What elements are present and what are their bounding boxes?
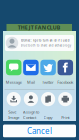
button[interactable]: Twitter <box>39 60 57 85</box>
button[interactable]: Copy <box>39 92 57 120</box>
button[interactable]: Save Image <box>5 92 22 120</box>
button[interactable]: Assign to Contact <box>22 92 39 120</box>
staticText: Save Image <box>8 109 19 120</box>
staticText: Cancel <box>27 126 52 136</box>
button[interactable]: Facebook <box>57 60 74 85</box>
staticText: tdOnse: Tips to turn an iB if I used <box>21 39 70 42</box>
button[interactable]: Mail <box>22 60 39 85</box>
staticText: Assign to Contact <box>23 109 39 120</box>
staticText: Message <box>6 79 22 85</box>
staticText: THE JT FAN CLUB <box>18 24 61 31</box>
staticText: Bluetooth to share and archaeology <box>21 44 71 47</box>
button[interactable]: Cancel <box>3 124 76 137</box>
button[interactable]: Message <box>5 60 22 85</box>
staticText: Mail <box>27 79 35 85</box>
button[interactable]: Print <box>57 92 74 120</box>
staticText: Facebook <box>57 79 73 85</box>
staticText: Print <box>61 115 69 120</box>
staticText: Twitter <box>42 79 54 85</box>
staticText: Copy <box>44 115 53 120</box>
